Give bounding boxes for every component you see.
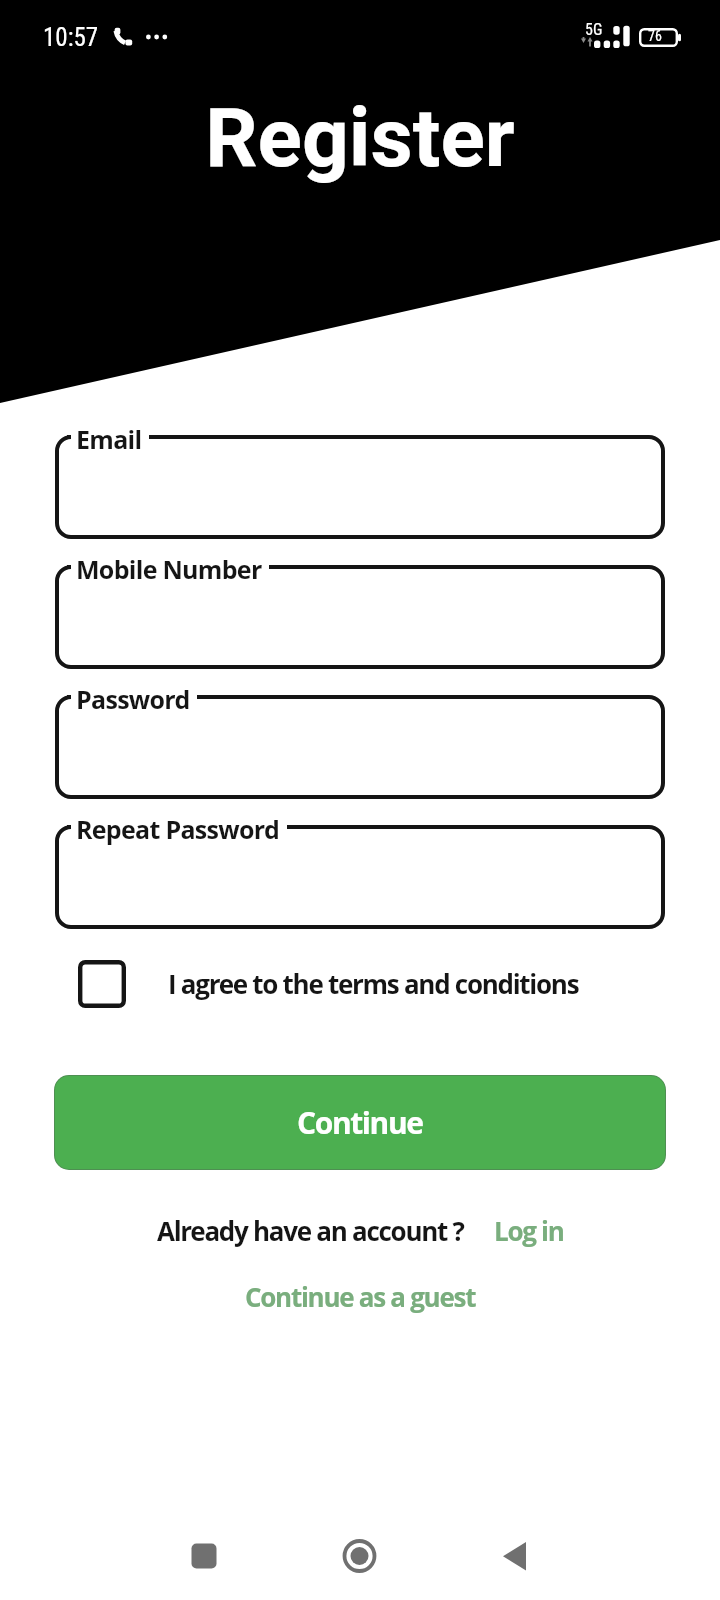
- staticText: Repeat Password: [76, 812, 280, 846]
- button[interactable]: Log in: [494, 1213, 564, 1248]
- staticText: 10:57: [43, 23, 99, 52]
- button[interactable]: Home: [326, 1522, 394, 1590]
- staticText: Continue: [297, 1102, 423, 1143]
- button[interactable]: Mobile Number: [55, 565, 665, 669]
- staticText: Mobile Number: [76, 552, 262, 586]
- staticText: Register: [0, 90, 720, 186]
- staticText: 76: [648, 28, 662, 44]
- staticText: 5G: [585, 20, 603, 39]
- button[interactable]: Back: [481, 1522, 549, 1590]
- staticText: Password: [76, 682, 190, 716]
- button[interactable]: Continue: [55, 1076, 665, 1169]
- staticText: Continue as a guest: [245, 1279, 476, 1314]
- staticText: Already have an account ?: [157, 1213, 464, 1248]
- button[interactable]: I agree to the terms and conditions: [78, 959, 579, 1008]
- staticText: Log in: [494, 1213, 564, 1248]
- staticText: I agree to the terms and conditions: [168, 966, 579, 1001]
- button[interactable]: Password: [55, 695, 665, 799]
- button[interactable]: Email: [55, 435, 665, 539]
- button[interactable]: Repeat Password: [55, 825, 665, 929]
- button[interactable]: Continue as a guest: [245, 1279, 476, 1314]
- staticText: Email: [76, 422, 142, 456]
- button[interactable]: Recent apps: [170, 1522, 238, 1590]
